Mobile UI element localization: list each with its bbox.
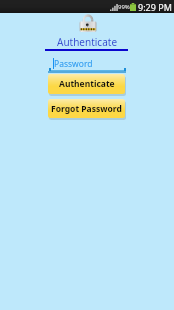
- button[interactable]: Authenticate: [48, 74, 125, 94]
- staticText: 9:29 PM: [138, 1, 172, 13]
- button[interactable]: Password: [49, 56, 125, 71]
- button[interactable]: Forgot Password: [48, 99, 125, 118]
- other: App icon: padlock: [79, 15, 97, 32]
- staticText: Authenticate: [57, 35, 118, 49]
- staticText: 99%: [118, 3, 130, 11]
- staticText: Password: [54, 58, 93, 70]
- staticText: Authenticate: [59, 78, 115, 90]
- staticText: Forgot Password: [51, 103, 122, 115]
